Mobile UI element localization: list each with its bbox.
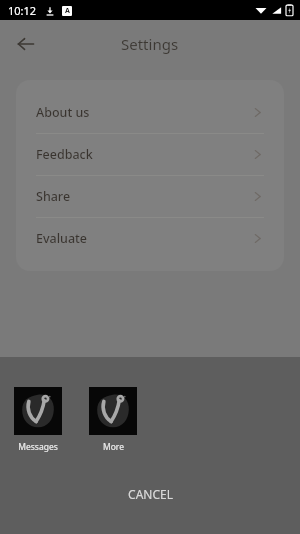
- button[interactable]: Evaluate: [16, 218, 284, 259]
- staticText: Settings: [121, 34, 179, 54]
- staticText: Evaluate: [36, 230, 88, 247]
- staticText: Feedback: [36, 146, 93, 163]
- staticText: Share: [36, 188, 71, 205]
- button[interactable]: CANCEL: [0, 472, 300, 516]
- button[interactable]: Feedback: [16, 134, 284, 175]
- button[interactable]: More: [89, 387, 137, 453]
- staticText: 10:12: [8, 3, 37, 18]
- button[interactable]: Share: [16, 176, 284, 217]
- button[interactable]: About us: [16, 92, 284, 133]
- staticText: More: [103, 441, 124, 453]
- button[interactable]: Messages: [14, 387, 62, 453]
- staticText: About us: [36, 104, 90, 121]
- button[interactable]: Back: [8, 26, 44, 62]
- staticText: Messages: [18, 441, 58, 453]
- staticText: CANCEL: [128, 486, 173, 502]
- staticText: A: [65, 6, 70, 16]
